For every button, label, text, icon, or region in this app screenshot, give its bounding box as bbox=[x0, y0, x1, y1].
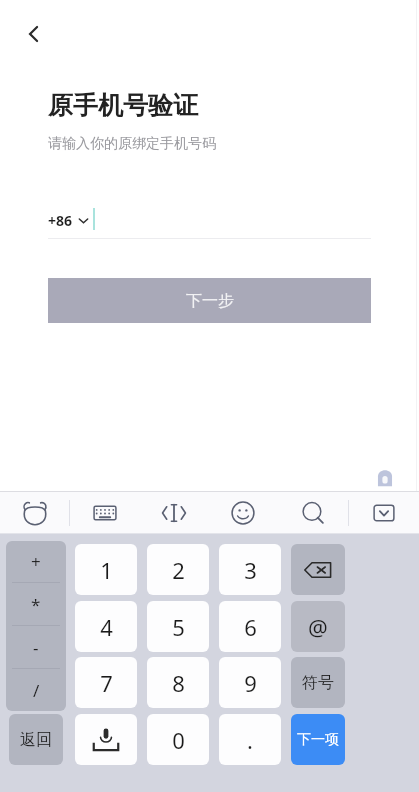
button[interactable]: 返回 bbox=[9, 714, 63, 765]
staticText: 下一项 bbox=[297, 731, 339, 749]
staticText: 9 bbox=[244, 668, 257, 698]
button[interactable]: . bbox=[219, 714, 281, 765]
button[interactable]: Input method badge bbox=[374, 466, 396, 488]
button[interactable]: 1 bbox=[75, 544, 137, 595]
button[interactable]: - bbox=[6, 626, 66, 668]
staticText: 下一步 bbox=[186, 291, 234, 311]
button[interactable]: Baidu input bbox=[0, 492, 69, 534]
button[interactable]: Backspace bbox=[291, 544, 345, 595]
button[interactable]: @ bbox=[291, 601, 345, 652]
staticText: 6 bbox=[244, 612, 257, 642]
button[interactable]: 符号 bbox=[291, 657, 345, 708]
staticText: 符号 bbox=[302, 673, 334, 693]
staticText: 返回 bbox=[20, 730, 52, 750]
staticText: / bbox=[33, 679, 40, 702]
staticText: 请输入你的原绑定手机号码 bbox=[48, 135, 216, 153]
button[interactable]: 5 bbox=[147, 601, 209, 652]
staticText: 7 bbox=[100, 668, 113, 698]
staticText: 8 bbox=[172, 668, 185, 698]
button[interactable]: Search bbox=[278, 492, 348, 534]
staticText: + bbox=[31, 550, 41, 573]
button[interactable]: Emoji bbox=[208, 492, 278, 534]
staticText: +86 bbox=[48, 211, 73, 230]
button[interactable]: / bbox=[6, 669, 66, 711]
button[interactable]: +86 bbox=[48, 203, 89, 237]
button[interactable]: 下一项 bbox=[291, 714, 345, 765]
button[interactable]: 下一步 bbox=[48, 278, 371, 323]
button[interactable]: 8 bbox=[147, 657, 209, 708]
staticText: . bbox=[247, 725, 253, 755]
button[interactable]: * bbox=[6, 583, 66, 625]
staticText: @ bbox=[308, 612, 328, 642]
button[interactable]: 0 bbox=[147, 714, 209, 765]
button[interactable]: 7 bbox=[75, 657, 137, 708]
staticText: - bbox=[33, 636, 39, 659]
button[interactable]: Hide keyboard bbox=[349, 492, 419, 534]
staticText: 1 bbox=[100, 555, 113, 585]
button[interactable]: Keyboard layout bbox=[70, 492, 139, 534]
staticText: 5 bbox=[172, 612, 185, 642]
button[interactable]: 6 bbox=[219, 601, 281, 652]
button[interactable]: Move cursor bbox=[139, 492, 208, 534]
staticText: 0 bbox=[172, 725, 185, 755]
staticText: 2 bbox=[172, 555, 185, 585]
button[interactable]: Voice input / space bbox=[75, 714, 137, 765]
button[interactable]: + bbox=[6, 541, 66, 582]
staticText: 原手机号验证 bbox=[48, 90, 198, 121]
staticText: 3 bbox=[244, 555, 257, 585]
button[interactable]: 3 bbox=[219, 544, 281, 595]
button[interactable]: 2 bbox=[147, 544, 209, 595]
button[interactable]: Back bbox=[12, 12, 56, 56]
button[interactable]: 4 bbox=[75, 601, 137, 652]
staticText: * bbox=[31, 593, 41, 616]
button[interactable]: 9 bbox=[219, 657, 281, 708]
staticText: 4 bbox=[100, 612, 113, 642]
